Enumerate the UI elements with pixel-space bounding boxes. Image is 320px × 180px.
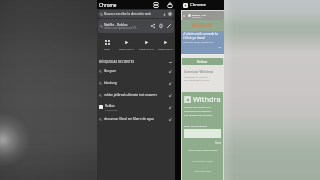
staticText: lika gum <box>104 69 167 73</box>
staticText: una suborobot ya está <box>184 78 210 81</box>
button[interactable]: roblox jailbreak ultimate test answers <box>99 89 173 101</box>
staticText: Roblox - Pla <box>192 13 206 16</box>
button[interactable]: Tab switcher <box>151 0 160 9</box>
staticText: Withdra <box>193 94 221 104</box>
staticText: Chrome <box>99 2 117 8</box>
staticText: Roblox Play G <box>119 48 134 51</box>
button[interactable]: Insert query <box>167 92 173 98</box>
staticText: Roblox <box>105 104 115 108</box>
staticText: Ver <box>218 46 222 49</box>
staticText: 3 Mensajes <box>105 108 118 111</box>
staticText: Want to see a new request? <box>188 149 218 152</box>
staticText: comenzar tu sesión a <box>184 75 208 78</box>
staticText: Rapido Play G <box>139 48 154 51</box>
staticText: this content will surely p <box>184 113 213 116</box>
button[interactable]: Collapse section <box>167 59 173 65</box>
button[interactable]: Link Withdraw <box>184 167 221 173</box>
staticText: bloxburg <box>104 81 167 85</box>
staticText: Completar Online <box>192 159 213 162</box>
staticText: sobre ese canal, de pasa tus <box>183 41 214 44</box>
button[interactable]: Netflix - Roblox <box>98 19 174 33</box>
button[interactable]: Rapido Play G <box>137 38 155 51</box>
staticText: Link Withdraw <box>194 169 211 172</box>
button[interactable]: adbol <box>98 38 116 51</box>
staticText: ✕ <box>183 14 186 17</box>
button[interactable]: Busca o escribe la dirección web <box>98 10 174 18</box>
button[interactable]: descansar Obral em Marro de agua <box>99 113 173 125</box>
staticText: Chrome <box>190 2 206 8</box>
staticText: roblox.co <box>192 16 202 19</box>
staticText: descansar Obral em Marro de agua <box>104 117 167 121</box>
staticText: Screen you cannot it! It <box>184 105 211 108</box>
button[interactable]: Share <box>149 22 157 30</box>
button[interactable]: Insert query <box>167 80 173 86</box>
button[interactable]: Insert query <box>167 116 173 122</box>
staticText: roblox jailbreak ultimate test answers <box>104 93 167 97</box>
button[interactable]: Insert query <box>167 104 173 110</box>
staticText: Netflix - Roblox <box>104 22 128 26</box>
staticText: Busca o escribe la dirección web <box>104 12 163 16</box>
staticText: Rapido Play G <box>158 48 173 51</box>
staticText: roblox.com/game/pass/39... <box>104 26 139 30</box>
staticText: ¡Cuánto está creando la <box>183 32 218 36</box>
button[interactable]: Copy link <box>157 22 165 30</box>
staticText: withdraw you retirase t <box>184 109 212 112</box>
staticText: Garantizar Withdraw <box>184 70 214 74</box>
button[interactable]: Completar Online <box>184 157 221 163</box>
staticText: Retirar <box>197 60 208 64</box>
button[interactable]: Roblox Play G <box>117 38 135 51</box>
staticText: adbol <box>104 48 111 51</box>
staticText: el link ya tiene! <box>183 36 206 40</box>
staticText: Di la. You do and yo <box>184 124 208 127</box>
button[interactable]: Insert query <box>167 68 173 74</box>
button[interactable]: Edit query <box>165 22 173 30</box>
button[interactable]: bloxburg <box>99 77 173 89</box>
button[interactable]: Incognito mode <box>165 0 174 9</box>
staticText: BÚSQUEDAS RECIENTES <box>99 60 135 64</box>
staticText: Next <box>215 141 221 145</box>
button[interactable]: Retirar <box>182 58 223 65</box>
button[interactable]: Roblox <box>99 101 173 113</box>
button[interactable]: lika gum <box>99 65 173 77</box>
staticText: ROBLOX <box>192 22 213 29</box>
button[interactable]: Rapido Play G <box>156 38 174 51</box>
